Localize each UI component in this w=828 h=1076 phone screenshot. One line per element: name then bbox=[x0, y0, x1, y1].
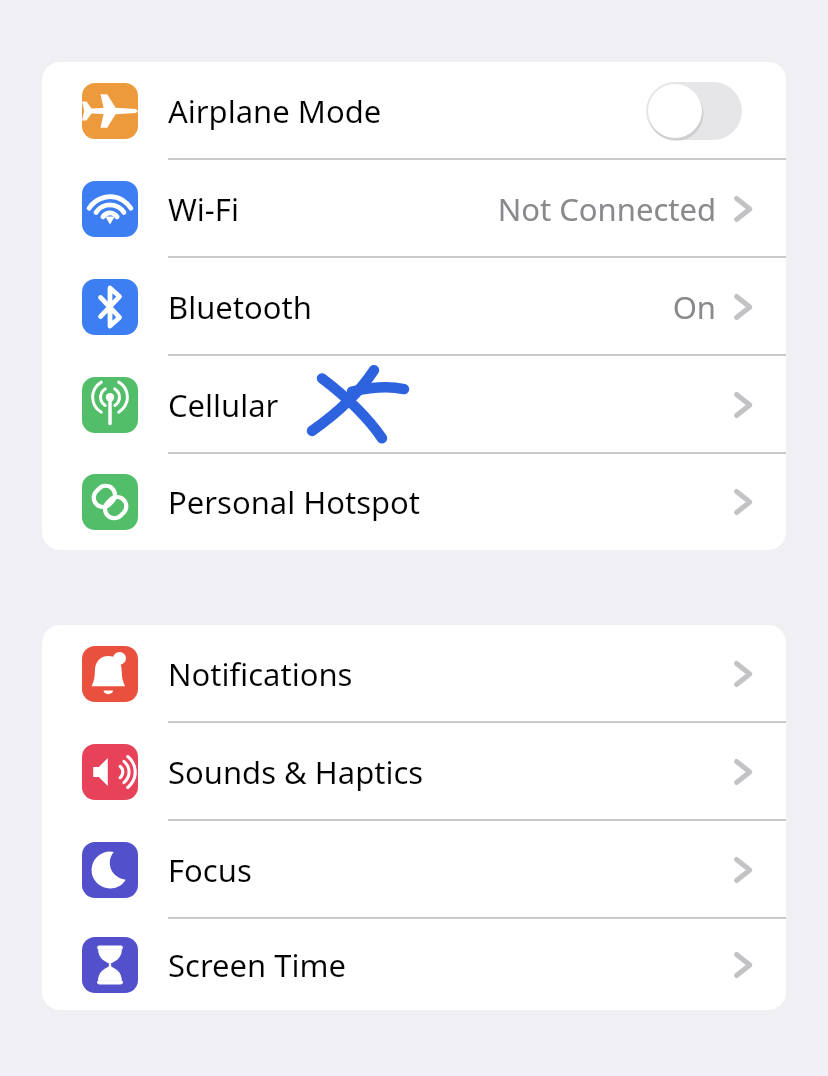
button[interactable]: Screen Time bbox=[42, 919, 786, 1010]
staticText: Notifications bbox=[168, 653, 353, 695]
button[interactable]: Cellular bbox=[42, 356, 786, 454]
button[interactable]: Bluetooth bbox=[42, 258, 786, 356]
staticText: Not Connected bbox=[497, 188, 716, 230]
button[interactable]: Focus bbox=[42, 821, 786, 919]
staticText: Wi-Fi bbox=[168, 188, 239, 230]
staticText: Airplane Mode bbox=[168, 90, 382, 132]
button[interactable]: Airplane Mode toggle, off bbox=[646, 82, 742, 140]
button[interactable]: Airplane Mode bbox=[42, 62, 786, 160]
staticText: Bluetooth bbox=[168, 286, 312, 328]
staticText: Focus bbox=[168, 849, 252, 891]
staticText: On bbox=[672, 286, 716, 328]
staticText: Cellular bbox=[168, 384, 279, 426]
staticText: Screen Time bbox=[168, 944, 346, 986]
button[interactable]: Sounds & Haptics bbox=[42, 723, 786, 821]
button[interactable]: Wi-Fi bbox=[42, 160, 786, 258]
button[interactable]: Notifications bbox=[42, 625, 786, 723]
staticText: Sounds & Haptics bbox=[168, 751, 424, 793]
staticText: Personal Hotspot bbox=[168, 481, 421, 523]
button[interactable]: Personal Hotspot bbox=[42, 454, 786, 550]
